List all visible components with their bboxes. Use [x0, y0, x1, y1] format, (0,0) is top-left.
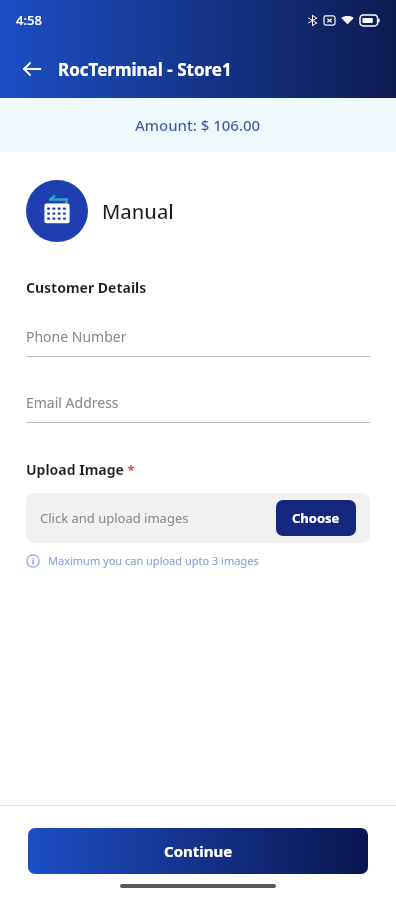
button[interactable]: Phone Number: [26, 327, 370, 357]
button[interactable]: Continue: [28, 828, 368, 874]
staticText: Upload Image: [26, 460, 124, 479]
staticText: *: [124, 461, 135, 479]
button[interactable]: Back: [10, 47, 54, 91]
staticText: Maximum you can upload upto 3 images: [48, 553, 259, 568]
staticText: Phone Number: [26, 327, 127, 346]
staticText: Amount: $ 106.00: [135, 115, 261, 135]
staticText: Continue: [164, 841, 233, 861]
staticText: Email Address: [26, 393, 119, 412]
staticText: Manual: [102, 198, 174, 225]
staticText: Choose: [292, 509, 340, 527]
staticText: RocTerminal - Store1: [58, 58, 232, 81]
button[interactable]: Click and upload images: [26, 493, 370, 543]
staticText: Customer Details: [26, 278, 147, 297]
staticText: Click and upload images: [40, 509, 189, 527]
button[interactable]: Choose: [276, 500, 356, 536]
button[interactable]: Email Address: [26, 393, 370, 423]
staticText: 4:58: [16, 11, 42, 29]
